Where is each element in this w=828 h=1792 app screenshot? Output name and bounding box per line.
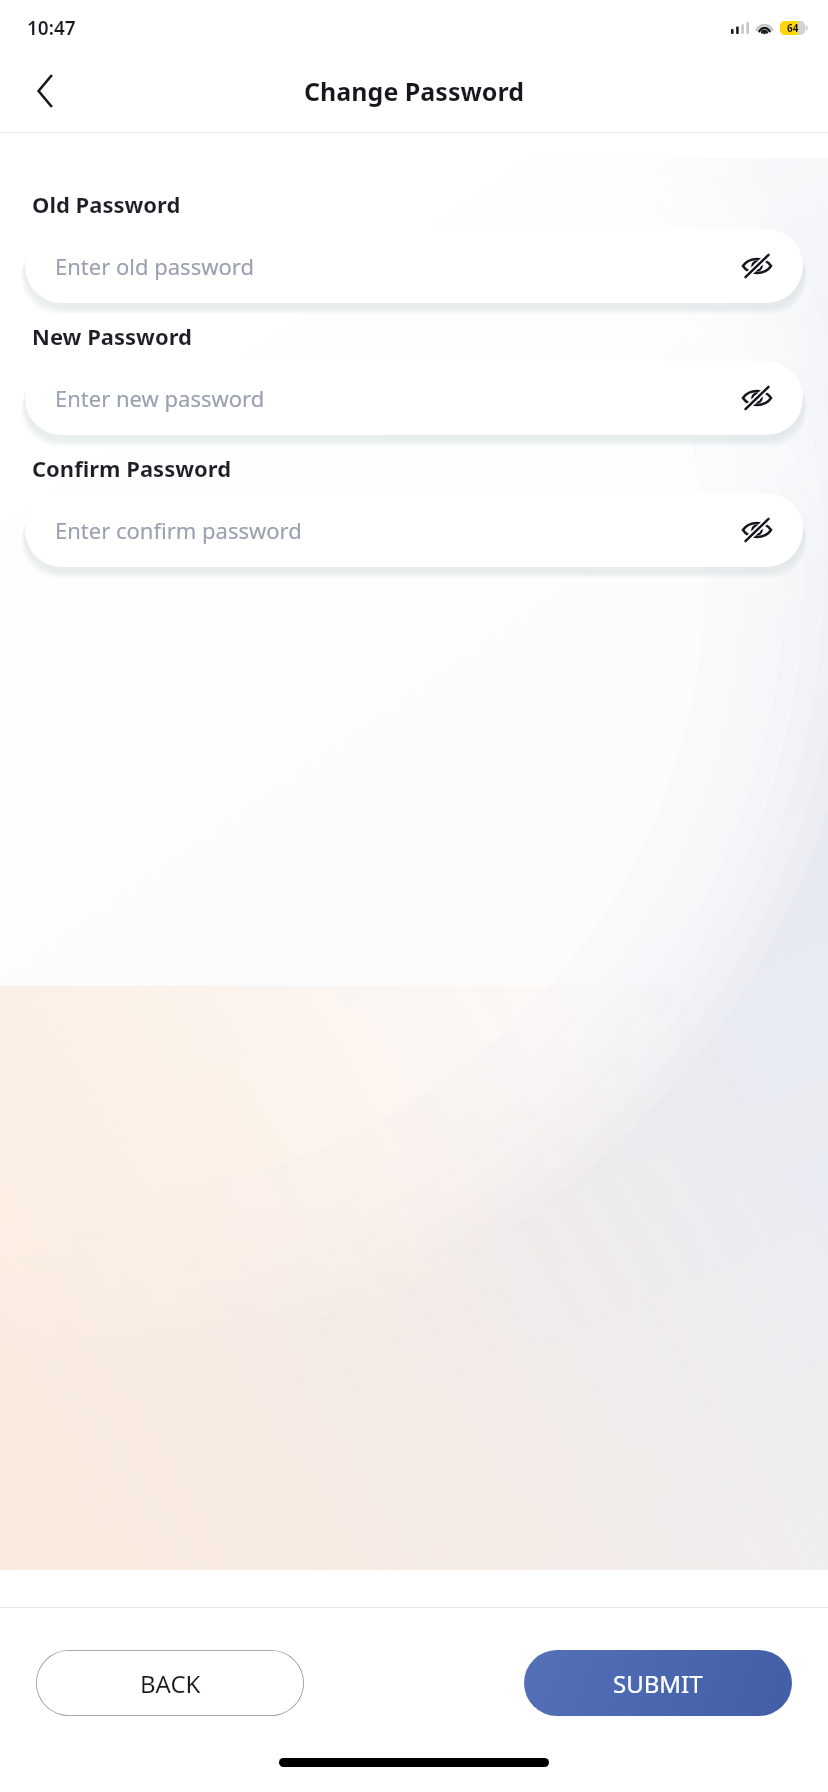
button[interactable]: Show password — [737, 378, 777, 418]
staticText: Enter old password — [55, 251, 737, 281]
button[interactable]: Enter confirm password — [25, 493, 803, 567]
button[interactable]: Show password — [737, 510, 777, 550]
button[interactable]: Back — [18, 64, 72, 118]
staticText: 64 — [787, 21, 799, 35]
button[interactable]: SUBMIT — [524, 1650, 792, 1716]
button[interactable]: Enter new password — [25, 361, 803, 435]
staticText: New Password — [32, 321, 192, 351]
staticText: BACK — [140, 1667, 201, 1700]
button[interactable]: Show password — [737, 246, 777, 286]
button[interactable]: BACK — [36, 1650, 304, 1716]
staticText: Enter confirm password — [55, 515, 737, 545]
staticText: SUBMIT — [613, 1667, 703, 1700]
staticText: Confirm Password — [32, 453, 232, 483]
staticText: Change Password — [304, 74, 524, 108]
button[interactable]: Enter old password — [25, 229, 803, 303]
staticText: Old Password — [32, 189, 181, 219]
staticText: 10:47 — [27, 15, 76, 41]
staticText: Enter new password — [55, 383, 737, 413]
